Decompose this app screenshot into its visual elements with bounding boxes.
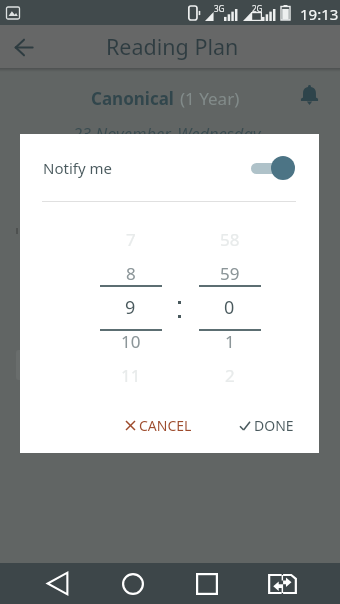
button[interactable]: CANCEL	[117, 408, 201, 443]
staticText: 23 November, Wednesday	[73, 122, 261, 144]
staticText: 2G	[252, 3, 263, 14]
staticText: 0	[224, 295, 235, 320]
staticText: 2	[225, 364, 235, 387]
button[interactable]: Home	[107, 563, 159, 604]
staticText: 10	[121, 330, 141, 353]
button[interactable]: 58	[179, 224, 280, 254]
button[interactable]: 8	[80, 258, 181, 288]
staticText: 11	[121, 364, 141, 387]
staticText: 59	[220, 262, 240, 285]
button[interactable]: Back	[6, 29, 42, 65]
button[interactable]: Recent apps	[181, 563, 233, 604]
button[interactable]: Split screen	[256, 563, 308, 604]
button[interactable]: Back	[31, 563, 83, 604]
button[interactable]: 59	[179, 258, 280, 288]
staticText: 19:13	[300, 4, 339, 24]
staticText: Reading Plan	[106, 32, 239, 61]
staticText: CANCEL	[139, 416, 192, 435]
button[interactable]: Notify me	[20, 134, 319, 201]
staticText: Canonical	[91, 87, 174, 110]
staticText: Notify me	[43, 158, 112, 178]
staticText: 58	[220, 228, 240, 251]
staticText: DONE	[254, 416, 294, 435]
button[interactable]: 9	[80, 292, 181, 322]
staticText: 3G	[214, 3, 225, 14]
button[interactable]: Notifications	[293, 79, 326, 112]
staticText: (1 Year)	[180, 87, 240, 110]
staticText: 8	[126, 262, 136, 285]
button[interactable]: 0	[179, 292, 280, 322]
staticText: 1	[225, 330, 235, 353]
button[interactable]: 10	[80, 326, 181, 356]
button[interactable]: DONE	[231, 408, 303, 443]
button[interactable]: 1	[179, 326, 280, 356]
staticText: 7	[126, 228, 136, 251]
staticText: 9	[125, 295, 136, 320]
